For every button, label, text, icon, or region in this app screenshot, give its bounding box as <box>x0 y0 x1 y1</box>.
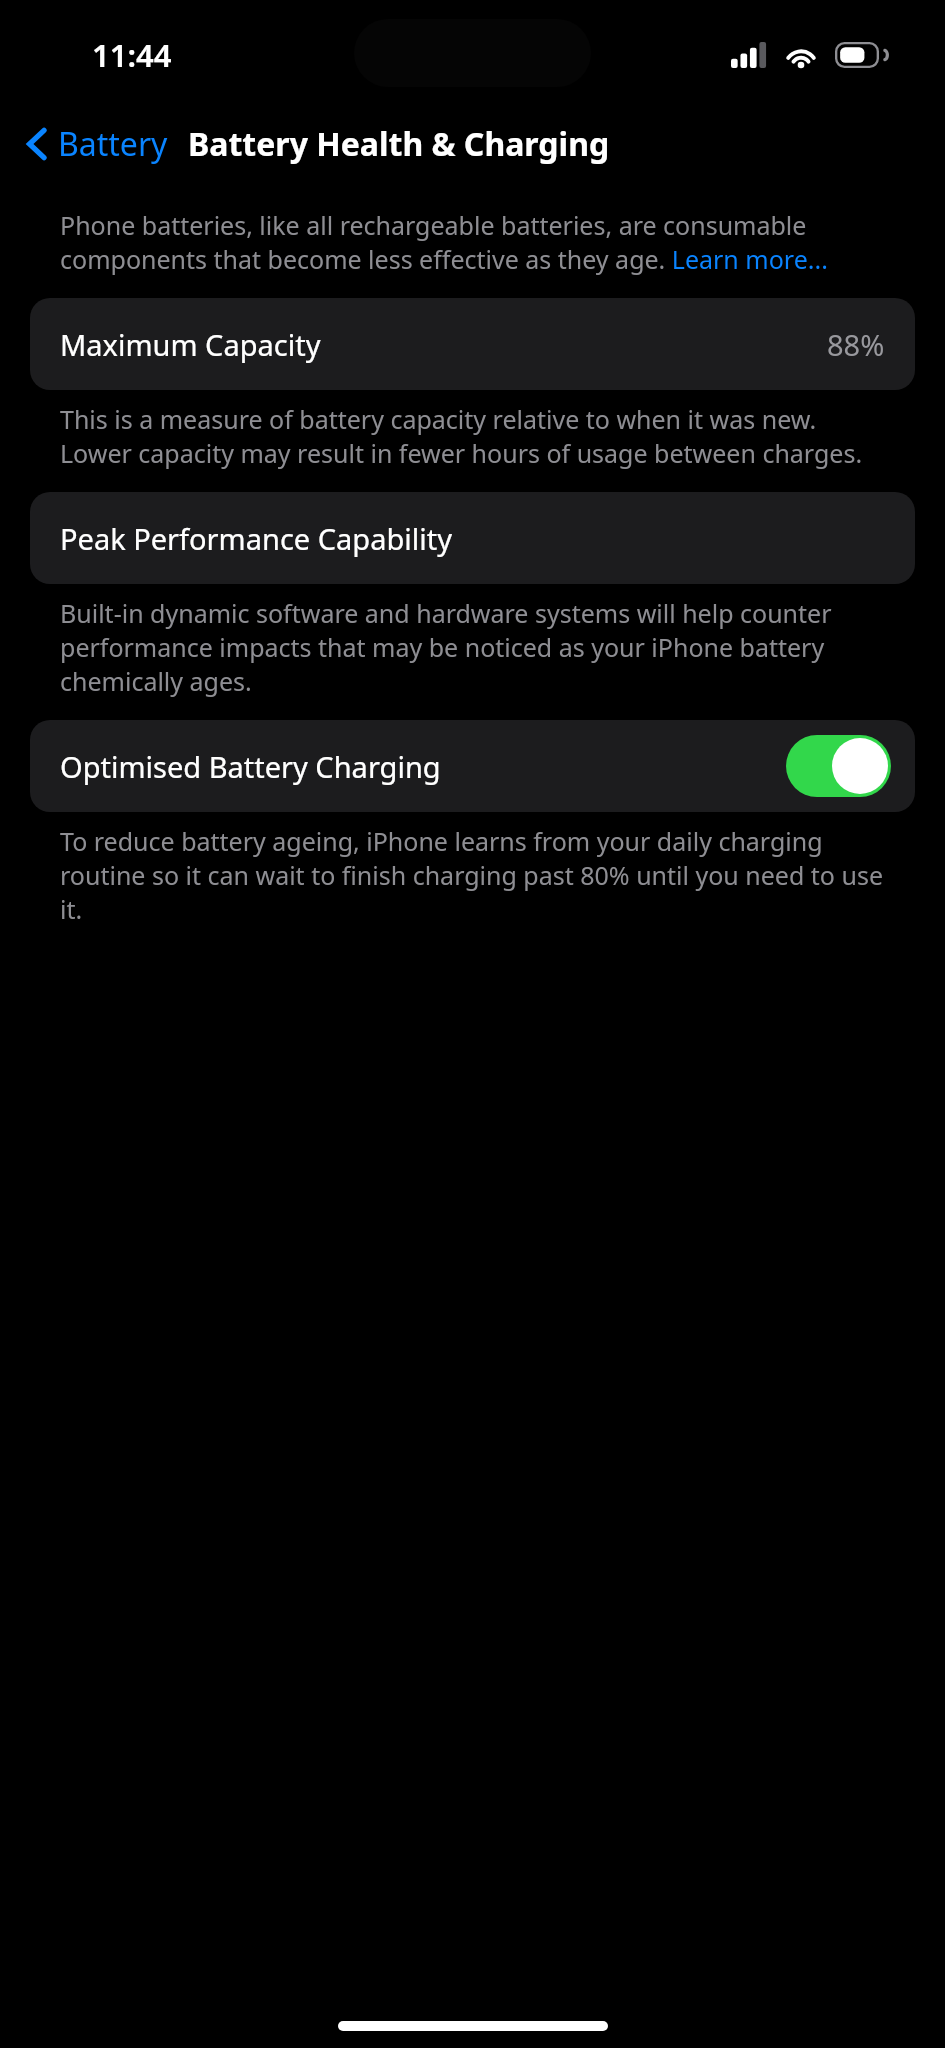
button[interactable]: Optimised Battery Charging <box>30 720 915 812</box>
button[interactable]: Maximum Capacity <box>30 298 915 390</box>
staticText: Battery Health & Charging <box>188 122 610 166</box>
staticText: To reduce battery ageing, iPhone learns … <box>60 824 885 926</box>
button[interactable]: Battery <box>18 116 176 172</box>
staticText: This is a measure of battery capacity re… <box>60 402 885 470</box>
staticText: Built-in dynamic software and hardware s… <box>60 596 885 698</box>
staticText: Peak Performance Capability <box>60 519 452 558</box>
button[interactable]: Phone batteries, like all rechargeable b… <box>60 208 885 276</box>
button[interactable]: Peak Performance Capability <box>30 492 915 584</box>
staticText: Phone batteries, like all rechargeable b… <box>60 208 885 276</box>
staticText: Battery <box>58 122 168 166</box>
staticText: 88% <box>827 325 885 364</box>
staticText: 11:44 <box>92 34 172 76</box>
button[interactable]: Optimised Battery Charging toggle, on <box>786 735 891 797</box>
staticText: Maximum Capacity <box>60 325 321 364</box>
staticText: Optimised Battery Charging <box>60 747 441 786</box>
